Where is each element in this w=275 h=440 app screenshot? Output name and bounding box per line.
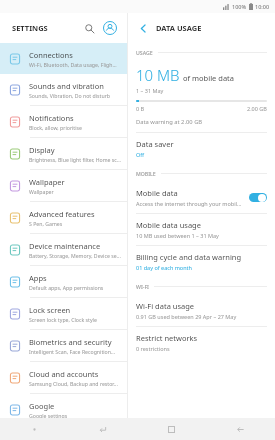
staticText: DATA USAGE: [156, 23, 202, 33]
staticText: Screen lock type, Clock style: [29, 316, 97, 323]
staticText: Connections: [29, 50, 73, 60]
staticText: Default apps, App permissions: [29, 284, 104, 291]
button[interactable]: Notifications: [0, 106, 127, 137]
staticText: Data warning at 2.00 GB: [136, 118, 203, 126]
staticText: MOBILE: [136, 170, 156, 177]
staticText: 1 – 31 May: [136, 87, 164, 94]
staticText: Apps: [29, 273, 47, 283]
button[interactable]: Biometrics and security: [0, 330, 127, 361]
button[interactable]: Mobile data: [128, 182, 275, 213]
staticText: 10 MB: [136, 65, 180, 85]
button[interactable]: Mobile data usage: [128, 214, 275, 245]
staticText: 0.91 GB used between 29 Apr – 27 May: [136, 313, 237, 320]
staticText: Wi-Fi data usage: [136, 301, 195, 311]
button[interactable]: Apps: [0, 266, 127, 297]
button[interactable]: Wallpaper: [0, 170, 127, 201]
staticText: 0 restrictions: [136, 345, 170, 352]
staticText: Advanced features: [29, 209, 95, 219]
staticText: Wallpaper: [29, 177, 65, 187]
staticText: Intelligent Scan, Face Recognition...: [29, 348, 116, 355]
staticText: Lock screen: [29, 305, 71, 315]
staticText: 2.00 GB: [247, 105, 267, 112]
button[interactable]: Data saver: [128, 133, 275, 164]
staticText: 10:00: [255, 3, 270, 10]
staticText: Google: [29, 401, 55, 411]
button[interactable]: Account: [101, 19, 119, 37]
button[interactable]: Wi-Fi data usage: [128, 295, 275, 326]
button[interactable]: 10 MB: [128, 61, 275, 132]
staticText: Off: [136, 151, 145, 158]
staticText: Access the internet through your mobile …: [136, 200, 243, 207]
staticText: WI-FI: [136, 283, 149, 290]
staticText: Device maintenance: [29, 241, 101, 251]
staticText: Brightness, Blue light filter, Home sc..…: [29, 156, 122, 163]
staticText: Data saver: [136, 139, 174, 149]
button[interactable]: Connections: [0, 43, 127, 74]
staticText: Wallpaper: [29, 188, 54, 195]
button[interactable]: Back: [206, 418, 275, 440]
staticText: Cloud and accounts: [29, 369, 99, 379]
staticText: Notifications: [29, 113, 74, 123]
staticText: Billing cycle and data warning: [136, 252, 242, 262]
staticText: 100%: [232, 3, 247, 10]
staticText: S Pen, Games: [29, 220, 63, 227]
staticText: of mobile data: [183, 73, 235, 83]
button[interactable]: Sounds and vibration: [0, 74, 127, 105]
staticText: 01 day of each month: [136, 264, 192, 271]
button[interactable]: Device maintenance: [0, 234, 127, 265]
staticText: Wi-Fi, Bluetooth, Data usage, Fligh...: [29, 61, 117, 68]
button[interactable]: Search: [80, 19, 98, 37]
staticText: 10 MB used between 1 – 31 May: [136, 232, 219, 239]
staticText: Block, allow, prioritise: [29, 124, 82, 131]
staticText: Mobile data: [136, 188, 178, 198]
staticText: Sounds and vibration: [29, 81, 104, 91]
button[interactable]: Lock screen: [0, 298, 127, 329]
staticText: Google settings: [29, 412, 68, 418]
staticText: Sounds, Vibration, Do not disturb: [29, 92, 110, 99]
staticText: Display: [29, 145, 55, 155]
staticText: Battery, Storage, Memory, Device se...: [29, 252, 121, 259]
button[interactable]: Hide keyboard: [68, 418, 137, 440]
button[interactable]: Billing cycle and data warning: [128, 246, 275, 277]
button[interactable]: Advanced features: [0, 202, 127, 233]
button[interactable]: Restrict networks: [128, 327, 275, 358]
button[interactable]: Display: [0, 138, 127, 169]
button[interactable]: Recents: [137, 418, 206, 440]
staticText: Mobile data usage: [136, 220, 201, 230]
staticText: USAGE: [136, 49, 153, 56]
button[interactable]: Back: [134, 19, 152, 37]
button[interactable]: Cloud and accounts: [0, 362, 127, 393]
staticText: Restrict networks: [136, 333, 198, 343]
staticText: 0 B: [136, 105, 145, 112]
staticText: SETTINGS: [12, 23, 48, 33]
staticText: Biometrics and security: [29, 337, 112, 347]
staticText: Samsung Cloud, Backup and restor...: [29, 380, 118, 387]
button[interactable]: Google: [0, 394, 127, 418]
